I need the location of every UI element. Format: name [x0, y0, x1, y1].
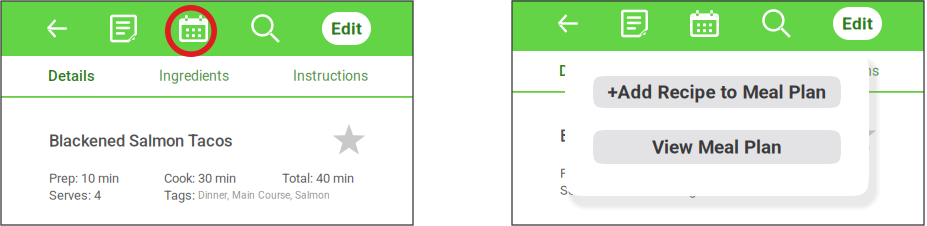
- button[interactable]: Search: [754, 0, 799, 47]
- staticText: Details: [559, 62, 606, 80]
- staticText: Details: [48, 67, 95, 85]
- staticText: Ingredients: [670, 63, 740, 79]
- staticText: View Meal Plan: [652, 136, 782, 158]
- button[interactable]: Instructions: [804, 52, 879, 90]
- staticText: Instructions: [293, 68, 368, 84]
- staticText: Tags:: [164, 188, 198, 203]
- staticText: Instructions: [804, 63, 879, 79]
- button[interactable]: Recipe notes: [101, 4, 146, 52]
- button[interactable]: Back: [34, 4, 79, 52]
- staticText: +Add Recipe to Meal Plan: [607, 81, 826, 103]
- button[interactable]: Ingredients: [159, 57, 229, 95]
- button[interactable]: Favorite: [841, 118, 879, 154]
- staticText: Prep: 10 min: [49, 171, 119, 186]
- button[interactable]: Meal plan: [171, 4, 216, 52]
- staticText: Edit: [842, 13, 873, 34]
- button[interactable]: Details: [48, 57, 95, 95]
- button[interactable]: Search: [243, 4, 288, 52]
- staticText: Blackened Salmon Tacos: [49, 131, 233, 150]
- button[interactable]: +Add Recipe to Meal Plan: [593, 76, 841, 108]
- button[interactable]: Instructions: [293, 57, 368, 95]
- button[interactable]: Meal plan: [682, 0, 727, 47]
- staticText: Tags:: [675, 183, 709, 198]
- button[interactable]: Recipe notes: [612, 0, 657, 47]
- button[interactable]: View Meal Plan: [593, 130, 841, 164]
- staticText: Serves: 4: [560, 183, 612, 198]
- staticText: Ingredients: [159, 68, 229, 84]
- button[interactable]: Favorite: [330, 123, 368, 159]
- button[interactable]: Ingredients: [670, 52, 740, 90]
- staticText: Serves: 4: [49, 188, 101, 203]
- button[interactable]: Edit: [322, 12, 371, 45]
- button[interactable]: Edit: [833, 7, 882, 40]
- staticText: Blackened Salmon Tacos: [560, 126, 744, 145]
- staticText: Dinner, Main Course, Salmon: [198, 189, 330, 201]
- staticText: Prep: 10 min: [560, 166, 630, 181]
- staticText: Total: 40 min: [282, 171, 354, 186]
- staticText: Cook: 30 min: [164, 171, 236, 186]
- button[interactable]: Back: [545, 0, 590, 47]
- staticText: Edit: [331, 18, 362, 39]
- button[interactable]: Details: [559, 52, 606, 90]
